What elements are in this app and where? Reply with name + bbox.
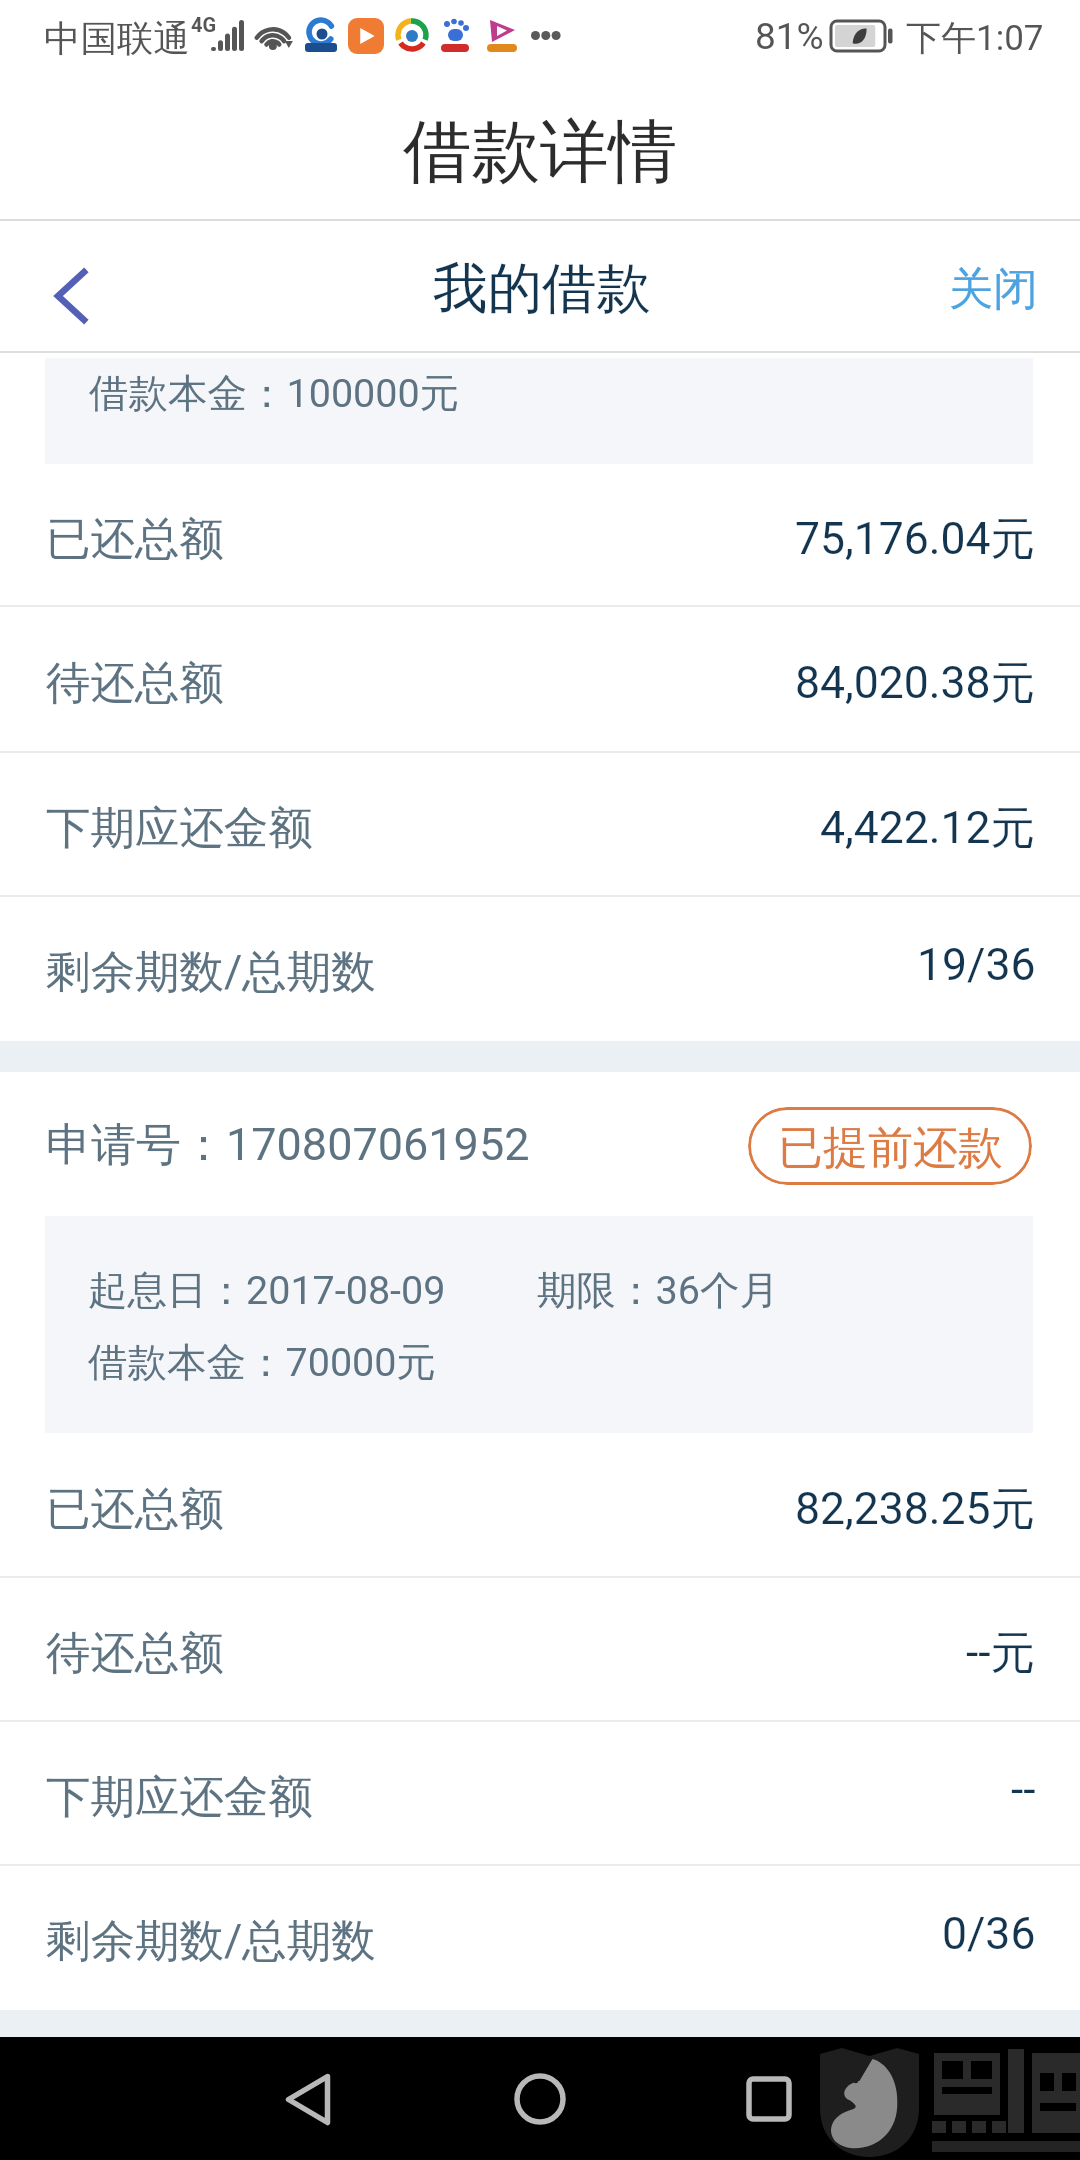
staticText: 75,176.04元	[795, 511, 1036, 567]
staticText: 4G	[191, 13, 217, 36]
staticText: 4,422.12元	[820, 800, 1036, 856]
button[interactable]: 剩余期数/总期数	[0, 1866, 1080, 2010]
button[interactable]: 已提前还款	[748, 1107, 1032, 1185]
staticText: 已提前还款	[778, 1120, 1003, 1177]
staticText: 申请号：170807061952	[46, 1117, 530, 1174]
staticText: 待还总额	[46, 655, 224, 711]
staticText: 待还总额	[46, 1625, 224, 1681]
button[interactable]: 已还总额	[0, 1433, 1080, 1578]
staticText: 剩余期数/总期数	[46, 944, 376, 1000]
staticText: 起息日：2017-08-09	[88, 1266, 446, 1316]
staticText: 关闭	[949, 261, 1038, 317]
staticText: 82,238.25元	[795, 1481, 1036, 1537]
staticText: 0/36	[942, 1908, 1036, 1960]
button[interactable]: 剩余期数/总期数	[0, 897, 1080, 1041]
staticText: 借款本金：100000元	[89, 369, 460, 419]
staticText: 下期应还金额	[46, 800, 313, 856]
button[interactable]: 下期应还金额	[0, 1722, 1080, 1866]
staticText: 我的借款	[433, 255, 651, 324]
staticText: 81%	[755, 15, 824, 58]
staticText: 剩余期数/总期数	[46, 1913, 376, 1969]
staticText: 期限：36个月	[537, 1266, 779, 1316]
staticText: 借款详情	[403, 109, 677, 195]
button[interactable]: 待还总额	[0, 607, 1080, 753]
button[interactable]: 返回	[248, 2039, 368, 2159]
button[interactable]: 关闭	[880, 221, 1080, 353]
staticText: 84,020.38元	[795, 655, 1036, 711]
button[interactable]: 已还总额	[0, 464, 1080, 607]
staticText: 已还总额	[46, 511, 224, 567]
button[interactable]: 待还总额	[0, 1578, 1080, 1722]
staticText: 借款本金：70000元	[88, 1338, 436, 1388]
staticText: --元	[966, 1625, 1036, 1681]
staticText: 中国联通	[44, 16, 190, 62]
staticText: --	[1011, 1764, 1036, 1816]
button[interactable]: 返回	[0, 221, 132, 353]
staticText: 19/36	[917, 939, 1036, 991]
staticText: 下午1:07	[906, 16, 1044, 60]
button[interactable]: 最近任务	[709, 2039, 829, 2159]
button[interactable]: 主页	[480, 2039, 600, 2159]
button[interactable]: 下期应还金额	[0, 753, 1080, 897]
staticText: 已还总额	[46, 1481, 224, 1537]
staticText: 下期应还金额	[46, 1769, 313, 1825]
